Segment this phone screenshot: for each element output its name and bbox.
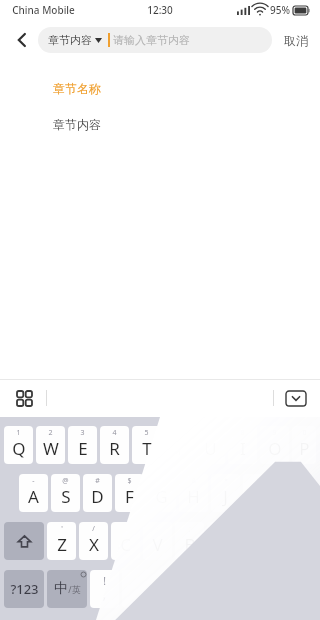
button[interactable]: 章节名称 [38, 70, 116, 106]
staticText: 章节内容 [48, 33, 92, 47]
staticText: 章节内容 [53, 117, 101, 132]
button[interactable]: 1 [4, 426, 33, 464]
staticText: /英 [68, 583, 81, 595]
staticText: , [102, 583, 107, 603]
staticText: 章节名称 [53, 81, 101, 96]
staticText: @ [62, 476, 69, 486]
staticText: W [43, 437, 59, 460]
button[interactable]: 3 [68, 426, 97, 464]
staticText: ( [256, 476, 259, 486]
staticText: 95% [270, 3, 290, 17]
staticText: E [78, 437, 88, 460]
staticText: T [142, 437, 152, 460]
button[interactable]: 4 [100, 426, 129, 464]
button[interactable]: Shift [4, 522, 44, 560]
button[interactable]: ! [90, 570, 119, 608]
button[interactable]: ; [175, 522, 204, 560]
button[interactable]: Hide keyboard [282, 384, 310, 412]
button[interactable]: 9 [260, 426, 289, 464]
button[interactable]: @ [51, 474, 80, 512]
staticText: / [92, 524, 95, 534]
staticText: 3 [80, 428, 85, 438]
button[interactable]: 2 [36, 426, 65, 464]
button[interactable]: ( [243, 474, 272, 512]
button[interactable]: - [19, 474, 48, 512]
button[interactable]: 0 [292, 426, 316, 464]
button[interactable]: / [79, 522, 108, 560]
staticText: # [95, 476, 100, 486]
button[interactable]: ? [207, 522, 236, 560]
button[interactable]: Back [8, 26, 36, 54]
staticText: 12:30 [147, 3, 173, 17]
staticText: $ [127, 476, 132, 486]
button[interactable]: Space [122, 570, 273, 608]
staticText: 5 [144, 428, 149, 438]
button[interactable]: ?123 [4, 570, 44, 608]
button[interactable]: 章节内容 [38, 27, 272, 53]
button[interactable]: More tools [10, 384, 38, 412]
staticText: S [61, 485, 71, 508]
button[interactable]: 取消 [280, 29, 312, 52]
button[interactable]: 章节内容 [38, 106, 116, 142]
staticText: 请输入章节内容 [113, 33, 190, 47]
staticText: R [109, 437, 120, 460]
staticText: B [184, 533, 196, 556]
staticText: ' [61, 524, 63, 534]
staticText: 取消 [284, 33, 308, 48]
staticText: Z [57, 533, 67, 556]
button[interactable]: 5 [132, 426, 161, 464]
staticText: D [91, 485, 104, 508]
staticText: X [89, 533, 99, 556]
staticText: A [28, 485, 39, 508]
staticText: 1 [16, 428, 21, 438]
button[interactable]: $ [115, 474, 144, 512]
staticText: ! [103, 574, 106, 588]
button[interactable]: ' [47, 522, 76, 560]
button[interactable]: # [83, 474, 112, 512]
staticText: ?123 [10, 580, 39, 598]
button[interactable]: * [211, 474, 240, 512]
staticText: 4 [112, 428, 117, 438]
staticText: 中 [54, 580, 68, 598]
staticText: Q [12, 437, 26, 460]
button[interactable]: 中 [47, 570, 87, 608]
staticText: - [32, 476, 35, 486]
